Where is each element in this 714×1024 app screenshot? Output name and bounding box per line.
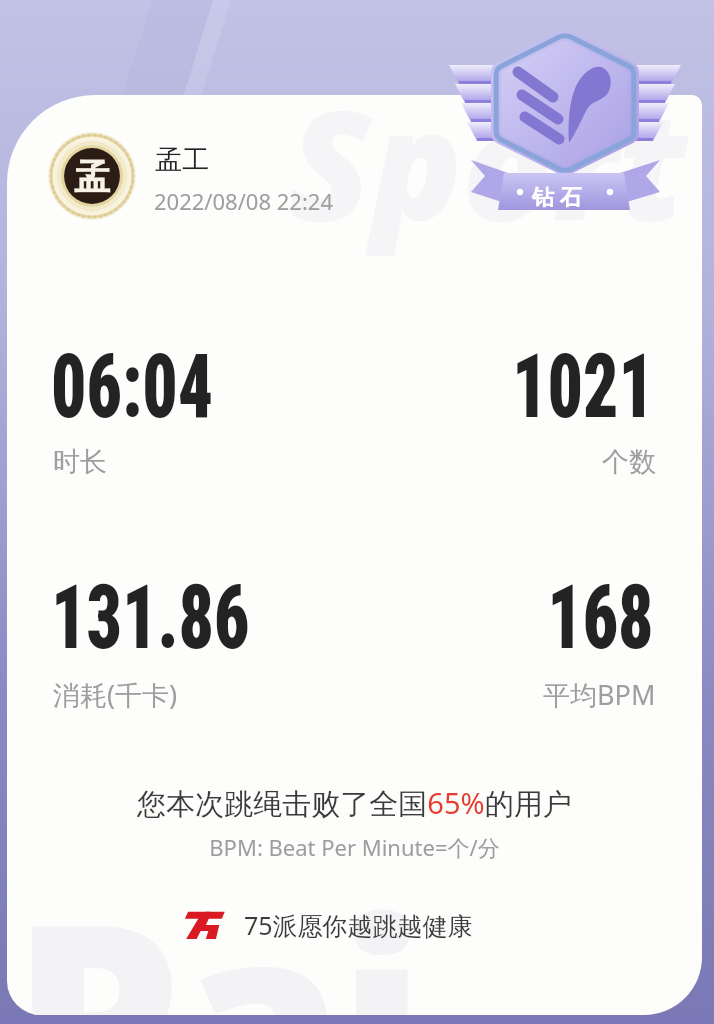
staticText: 平均BPM [543,676,656,713]
staticText: Pai [11,830,420,1015]
staticText: 06:04 [51,334,213,438]
staticText: 131.86 [51,565,250,669]
button[interactable]: 钻石等级徽章 [444,22,688,218]
staticText: 钻 石 [532,181,582,211]
staticText: 75派愿你越跳越健康 [244,908,473,940]
button[interactable]: 75派愿你越跳越健康 [184,908,473,940]
staticText: 孟 [74,155,110,200]
staticText: 时长 [53,445,107,479]
staticText: 168 [547,565,654,669]
staticText: BPM: Beat Per Minute=个/分 [7,832,702,862]
staticText: 您本次跳绳击败了全国65%的用户 [7,783,702,823]
staticText: 消耗(千卡) [53,676,178,713]
staticText: 个数 [602,445,656,479]
button[interactable]: 孟 [48,132,348,224]
staticText: 2022/08/08 22:24 [154,186,333,216]
staticText: 孟工 [155,143,209,177]
staticText: Sport [289,95,688,264]
staticText: 1021 [512,334,654,438]
